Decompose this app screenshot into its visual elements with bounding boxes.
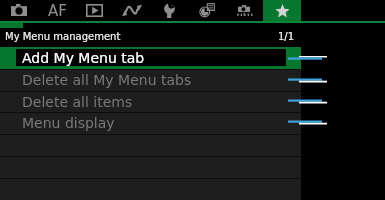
staticText: 1/1 (278, 31, 295, 43)
button[interactable]: Delete all My Menu tabs (0, 69, 301, 91)
staticText: Add My Menu tab (22, 50, 145, 66)
staticText: My Menu management (5, 31, 121, 43)
staticText: Delete all items (22, 94, 133, 110)
staticText: Menu display (22, 115, 115, 131)
button[interactable]: Menu display (0, 112, 301, 134)
button[interactable]: Shooting settings (11, 4, 27, 16)
button[interactable]: Wireless features (122, 5, 142, 16)
button[interactable]: My Menu tab (263, 0, 301, 22)
button[interactable]: Playback settings (86, 4, 103, 17)
button[interactable]: Setup settings (164, 4, 175, 18)
staticText: Delete all My Menu tabs (22, 72, 192, 88)
button[interactable]: Add My Menu tab (0, 47, 301, 69)
button[interactable]: Delete all items (0, 91, 301, 113)
button[interactable]: Custom shooting mode (237, 4, 252, 16)
button[interactable]: Custom functions (199, 3, 215, 17)
button[interactable]: AF settings (44, 1, 70, 20)
staticText: AF (48, 2, 67, 19)
